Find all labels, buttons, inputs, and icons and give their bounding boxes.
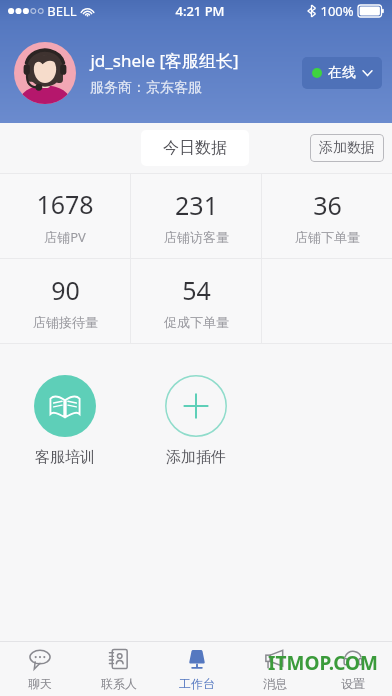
staticText: 90 <box>51 273 80 307</box>
staticText: 今日数据 <box>163 138 227 158</box>
staticText: 添加插件 <box>166 448 226 467</box>
button[interactable]: 工作台 <box>158 642 236 696</box>
button[interactable]: 54 <box>131 259 261 343</box>
staticText: 工作台 <box>179 676 215 691</box>
staticText: 设置 <box>341 676 365 691</box>
button[interactable]: 设置 <box>314 642 392 696</box>
button[interactable]: 36 <box>262 174 392 258</box>
button[interactable]: 今日数据 <box>141 130 249 166</box>
staticText: 100% <box>320 2 354 20</box>
button[interactable]: 添加插件 <box>130 373 261 469</box>
staticText: jd_shele [客服组长] <box>90 49 239 72</box>
staticText: 消息 <box>263 676 287 691</box>
staticText: BELL <box>47 2 77 20</box>
button[interactable]: 90 <box>0 259 130 343</box>
staticText: 添加数据 <box>319 139 375 157</box>
staticText: 店铺下单量 <box>295 229 360 245</box>
staticText: 231 <box>175 188 218 222</box>
button[interactable]: 消息 <box>236 642 314 696</box>
button[interactable]: 联系人 <box>79 642 158 696</box>
button[interactable]: 在线 <box>302 57 382 89</box>
staticText: 联系人 <box>101 676 137 691</box>
staticText: 店铺PV <box>44 228 86 246</box>
staticText: 4:21 PM <box>175 2 225 20</box>
staticText: 服务商：京东客服 <box>90 79 202 97</box>
button[interactable]: 聊天 <box>0 642 79 696</box>
staticText: 1678 <box>36 187 94 221</box>
staticText: 36 <box>313 188 342 222</box>
button[interactable]: 客服培训 <box>0 373 130 469</box>
staticText: ITMOP.COM <box>268 650 378 676</box>
staticText: 促成下单量 <box>164 314 229 330</box>
staticText: 客服培训 <box>35 448 95 467</box>
staticText: 聊天 <box>28 676 52 691</box>
staticText: 在线 <box>328 64 356 82</box>
button[interactable]: 添加数据 <box>310 134 384 162</box>
button[interactable]: 1678 <box>0 174 130 258</box>
staticText: 54 <box>182 273 211 307</box>
staticText: 店铺访客量 <box>164 229 229 245</box>
staticText: 店铺接待量 <box>33 314 98 330</box>
button[interactable]: 231 <box>131 174 261 258</box>
button[interactable]: Profile avatar <box>14 42 76 104</box>
